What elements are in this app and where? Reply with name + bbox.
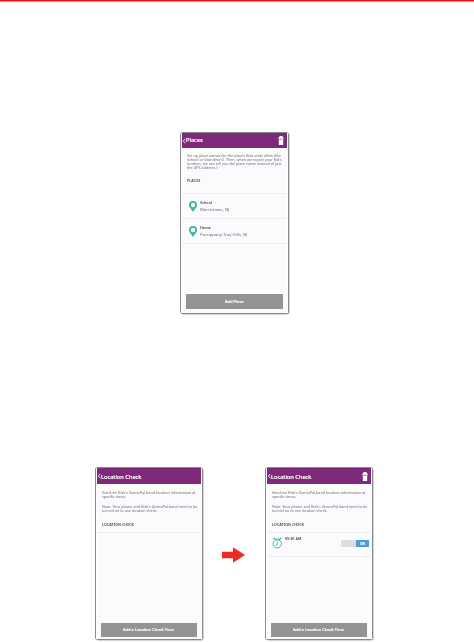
button[interactable]: Home: [182, 219, 287, 243]
button[interactable]: Delete: [274, 133, 287, 148]
staticText: Add a Location Check Time: [123, 627, 175, 633]
button[interactable]: Add a Location Check Time: [271, 623, 367, 637]
staticText: Send me Kids's GizmoPal band location in…: [272, 490, 367, 500]
staticText: Places: [186, 136, 203, 144]
staticText: Add a Location Check Time: [293, 627, 345, 633]
staticText: PLACES: [187, 178, 201, 183]
staticText: Home: [200, 225, 211, 230]
staticText: ON: [360, 542, 365, 546]
staticText: Add Place: [225, 299, 244, 305]
staticText: LOCATION CHECK: [102, 522, 135, 527]
button[interactable]: Back: [182, 133, 186, 148]
staticText: Morristown, NJ: [200, 207, 230, 213]
staticText: Set up place names for the places Kids v…: [187, 153, 285, 170]
button[interactable]: Delete: [358, 468, 371, 484]
button[interactable]: School: [182, 194, 287, 218]
button[interactable]: Add a Location Check Time: [101, 623, 197, 637]
button[interactable]: Back: [267, 468, 271, 484]
staticText: Location Check: [101, 473, 142, 481]
button[interactable]: Back: [97, 468, 101, 484]
staticText: Location Check: [271, 473, 312, 481]
button[interactable]: ON: [341, 540, 369, 547]
button[interactable]: Add Place: [186, 294, 283, 309]
staticText: Parsippany-Troy Hills, NJ: [200, 232, 248, 238]
button[interactable]: 09:30 AM: [267, 533, 371, 556]
staticText: LOCATION CHECK: [272, 522, 305, 527]
staticText: Note: Your phone and Kids's GizmoPal ban…: [102, 504, 199, 514]
staticText: Send me Kids's GizmoPal band location in…: [102, 490, 197, 500]
staticText: 09:30 AM: [285, 536, 302, 541]
staticText: Note: Your phone and Kids's GizmoPal ban…: [272, 504, 369, 514]
staticText: School: [200, 200, 213, 205]
